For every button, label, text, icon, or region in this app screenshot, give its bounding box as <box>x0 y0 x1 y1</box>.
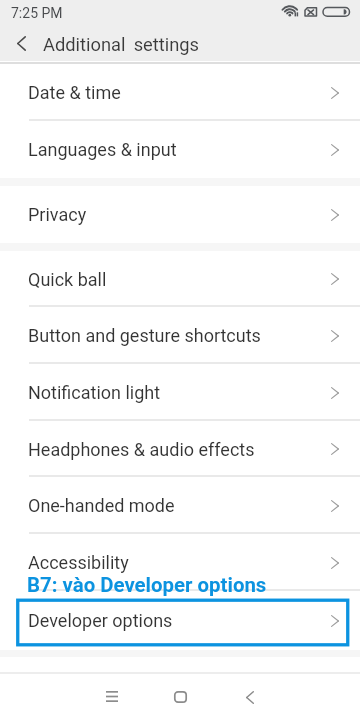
button[interactable]: Accessibility <box>0 534 360 591</box>
staticText: Quick ball <box>28 269 107 290</box>
staticText: Developer options <box>28 610 173 631</box>
button[interactable]: Languages & input <box>0 121 360 178</box>
button[interactable]: Recent apps <box>78 674 146 720</box>
staticText: Privacy <box>28 204 87 225</box>
button[interactable]: One-handed mode <box>0 477 360 534</box>
staticText: Date & time <box>28 82 121 103</box>
staticText: Accessibility <box>28 552 129 573</box>
staticText: Headphones & audio effects <box>28 439 255 460</box>
staticText: Button and gesture shortcuts <box>28 325 261 346</box>
staticText: One-handed mode <box>28 495 175 516</box>
button[interactable]: Home <box>146 674 214 720</box>
staticText: 7:25 PM <box>11 5 63 21</box>
button[interactable]: Back <box>214 674 282 720</box>
staticText: Notification light <box>28 382 161 403</box>
staticText: Languages & input <box>28 139 177 160</box>
button[interactable]: Privacy <box>0 186 360 243</box>
button[interactable]: Quick ball <box>0 251 360 307</box>
button[interactable]: Developer options <box>0 591 360 650</box>
staticText: B7: vào Developer options <box>27 573 267 597</box>
button[interactable]: Back <box>0 25 42 61</box>
button[interactable]: Button and gesture shortcuts <box>0 307 360 364</box>
button[interactable]: Headphones & audio effects <box>0 421 360 477</box>
button[interactable]: Notification light <box>0 364 360 421</box>
staticText: Additional settings <box>43 34 200 55</box>
button[interactable]: Date & time <box>0 64 360 121</box>
